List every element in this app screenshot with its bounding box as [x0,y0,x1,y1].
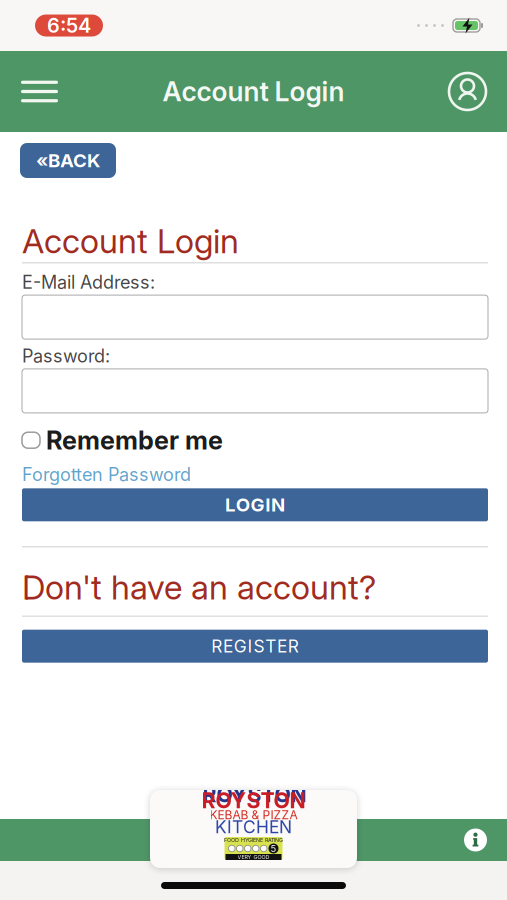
staticText: REGISTER [211,636,299,657]
button[interactable]: Back [20,143,116,178]
button[interactable]: Account [449,73,507,110]
staticText: Forgotten Password [22,463,191,485]
button[interactable]: Info [464,828,507,851]
staticText: 6:54 [47,13,91,38]
button[interactable]: Remember me [0,425,223,456]
button[interactable]: Menu [0,71,58,112]
staticText: Account Login [162,75,344,108]
staticText: «BACK [36,149,100,172]
staticText: E-Mail Address: [22,271,155,293]
button[interactable]: LOGIN [22,488,488,521]
staticText: FOOD HYGIENE RATING [224,837,283,843]
button[interactable]: Forgotten Password [0,463,191,485]
button[interactable]: Royston Kebab and Pizza Kitchen [150,790,357,868]
button[interactable]: REGISTER [22,630,488,663]
staticText: 5 [270,843,276,854]
staticText: VERY GOOD [237,854,269,860]
staticText: KEBAB & PIZZA [209,808,297,822]
staticText: Account Login [22,221,239,261]
staticText: Password: [22,345,110,367]
staticText: KITCHEN [215,816,292,837]
staticText: Remember me [46,425,223,456]
staticText: ROYSTON [202,782,306,807]
button[interactable]: Screen recording 6:54 [35,14,103,36]
staticText: Don't have an account? [22,567,376,608]
staticText: ROYSTON [201,788,305,813]
staticText: LOGIN [225,493,285,516]
